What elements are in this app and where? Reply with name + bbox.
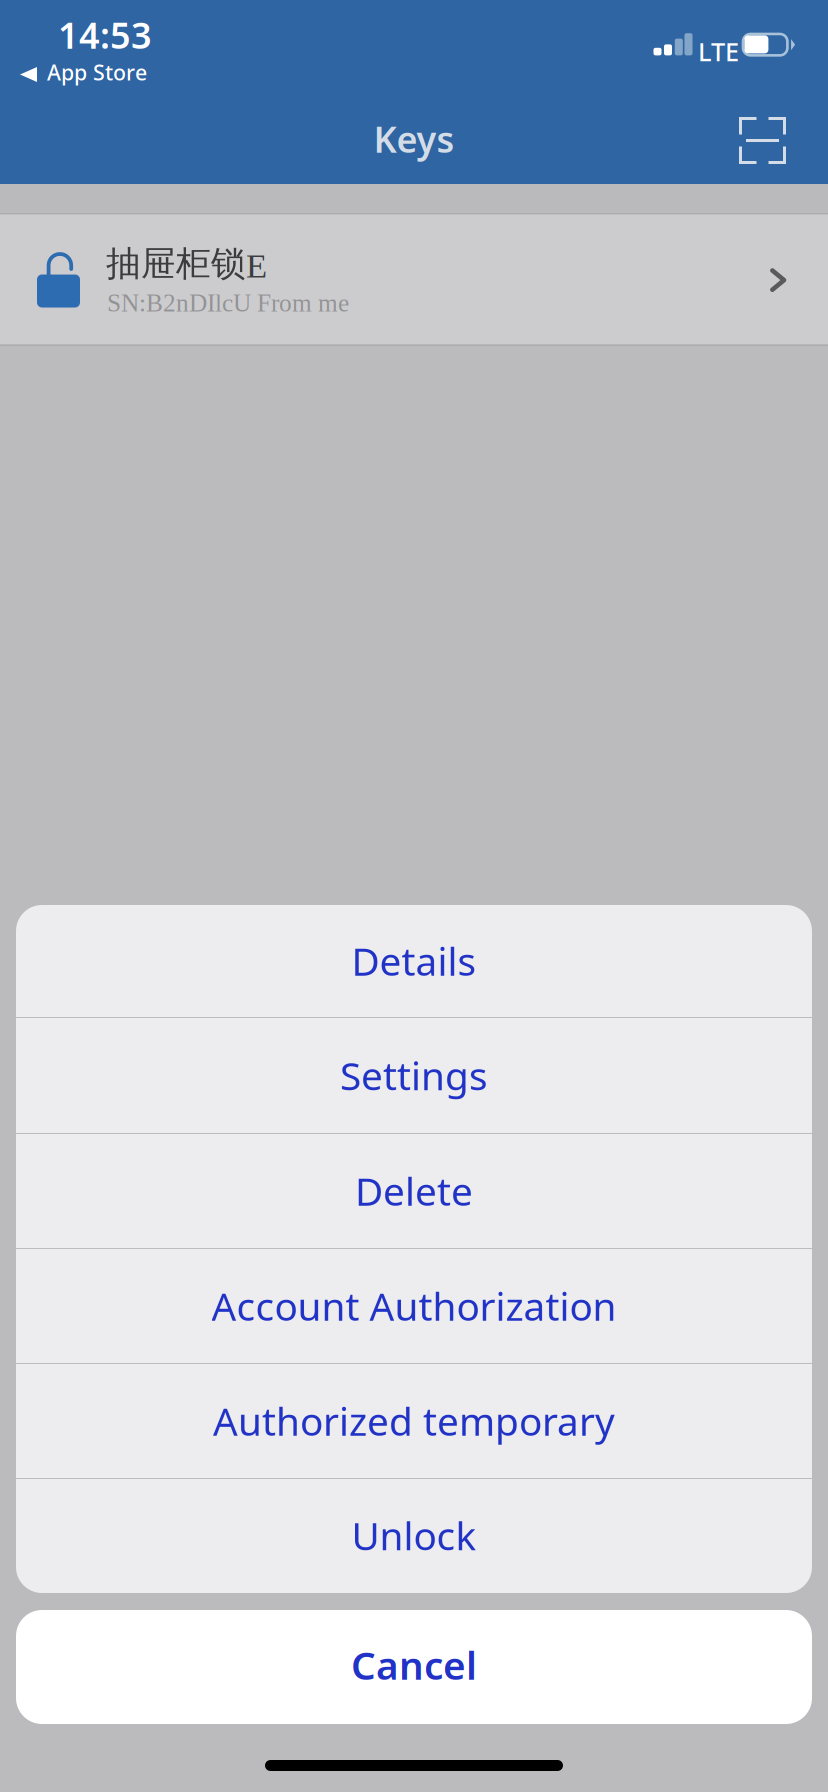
staticText: LTE (698, 35, 739, 68)
staticText: Cancel (351, 1639, 477, 1690)
staticText: 14:53 (58, 11, 152, 59)
button[interactable]: 抽屉柜锁E (0, 214, 828, 344)
button[interactable]: Unlock (16, 1479, 812, 1593)
button[interactable]: Details (16, 905, 812, 1018)
button[interactable]: Delete (16, 1134, 812, 1249)
button[interactable]: App Store (20, 58, 179, 90)
staticText: SN:B2nDIlcU From me (107, 289, 349, 317)
button[interactable]: Cancel (16, 1610, 812, 1724)
staticText: Details (351, 935, 476, 986)
button[interactable]: Settings (16, 1018, 812, 1134)
staticText: Unlock (351, 1509, 476, 1561)
staticText: 抽屉柜锁E (106, 242, 267, 285)
staticText: Authorized temporary (213, 1395, 615, 1446)
staticText: Delete (355, 1165, 473, 1216)
button[interactable]: Account Authorization (16, 1249, 812, 1364)
staticText: Keys (373, 115, 454, 163)
button[interactable]: Scan (726, 105, 798, 173)
staticText: Account Authorization (211, 1280, 616, 1331)
button[interactable]: Authorized temporary (16, 1364, 812, 1479)
staticText: Settings (340, 1049, 488, 1101)
staticText: App Store (47, 58, 147, 86)
